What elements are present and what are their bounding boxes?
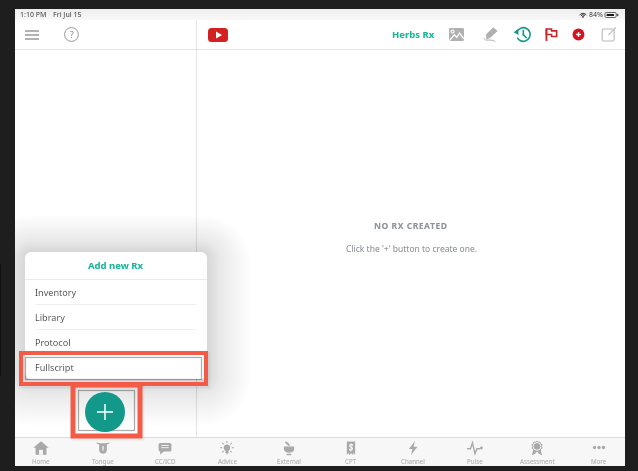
staticText: Pulse bbox=[467, 457, 483, 465]
button[interactable]: Library bbox=[25, 305, 207, 329]
button[interactable]: Protocol bbox=[25, 330, 207, 354]
staticText: More bbox=[591, 457, 607, 465]
button[interactable]: Flag bbox=[537, 22, 563, 47]
staticText: Tongue bbox=[92, 457, 114, 465]
button[interactable]: Herbs Rx bbox=[392, 20, 435, 49]
button[interactable]: Draw bbox=[477, 22, 503, 47]
button[interactable]: Menu bbox=[17, 20, 46, 49]
button[interactable]: Help bbox=[58, 20, 85, 49]
button[interactable]: More bbox=[573, 440, 625, 467]
button[interactable]: Inventory bbox=[25, 280, 207, 304]
staticText: Click the '+' button to create one. bbox=[346, 243, 477, 255]
button[interactable]: CPT bbox=[325, 440, 377, 467]
button[interactable]: External bbox=[263, 440, 315, 467]
staticText: Herbs Rx bbox=[392, 28, 435, 41]
button[interactable]: Edit bbox=[595, 22, 621, 47]
staticText: Fri Jul 15 bbox=[53, 10, 82, 20]
staticText: 84% bbox=[589, 10, 603, 20]
staticText: External bbox=[277, 457, 301, 465]
staticText: Advice bbox=[218, 457, 237, 465]
staticText: Assessment bbox=[520, 457, 555, 465]
staticText: Add new Rx bbox=[88, 259, 144, 272]
button[interactable]: Pulse bbox=[449, 440, 501, 467]
button[interactable]: Channel bbox=[387, 440, 439, 467]
staticText: CPT bbox=[345, 457, 357, 465]
button[interactable]: Add bbox=[565, 22, 591, 47]
staticText: Fullscript bbox=[35, 361, 74, 373]
staticText: Channel bbox=[401, 457, 425, 465]
button[interactable]: Photos bbox=[443, 22, 469, 47]
button[interactable]: Fullscript bbox=[25, 355, 207, 379]
staticText: Home bbox=[32, 457, 50, 465]
staticText: Protocol bbox=[35, 336, 71, 348]
button[interactable]: Tongue bbox=[77, 440, 129, 467]
staticText: NO RX CREATED bbox=[374, 220, 448, 232]
staticText: 1:10 PM bbox=[20, 10, 47, 20]
button[interactable]: Add new prescription bbox=[85, 392, 125, 432]
button[interactable]: CC/ICD bbox=[139, 440, 191, 467]
staticText: Inventory bbox=[35, 286, 77, 298]
button[interactable]: Home bbox=[15, 440, 67, 467]
button[interactable]: History bbox=[509, 22, 535, 47]
button[interactable]: Advice bbox=[201, 440, 253, 467]
button[interactable]: Video tutorial bbox=[206, 25, 230, 44]
button[interactable]: Assessment bbox=[511, 440, 563, 467]
staticText: ? bbox=[70, 29, 74, 41]
staticText: CC/ICD bbox=[155, 457, 176, 465]
staticText: Library bbox=[35, 311, 65, 323]
